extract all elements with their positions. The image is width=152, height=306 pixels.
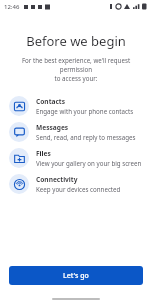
button[interactable]: Contacts <box>0 93 152 119</box>
button[interactable]: Connectivity <box>0 171 152 197</box>
staticText: Connectivity <box>36 175 78 184</box>
staticText: Contacts <box>36 97 66 106</box>
staticText: Send, read, and reply to messages <box>36 133 136 141</box>
other: Contacts <box>9 96 29 116</box>
button[interactable]: Files <box>0 145 152 171</box>
staticText: For the best experience, we'll request p… <box>5 56 147 83</box>
button[interactable]: Let's go <box>9 266 143 285</box>
staticText: Keep your devices connected <box>36 185 121 193</box>
staticText: Let's go <box>63 271 89 281</box>
staticText: Messages <box>36 123 69 132</box>
staticText: View your gallery on your big screen <box>36 159 142 167</box>
other: Files <box>9 148 29 168</box>
other: Connectivity <box>9 174 29 194</box>
staticText: 12:46 <box>4 3 20 11</box>
staticText: Engage with your phone contacts <box>36 107 134 115</box>
staticText: Before we begin <box>0 32 152 50</box>
staticText: Files <box>36 149 51 158</box>
button[interactable]: Messages <box>0 119 152 145</box>
other: Messages <box>9 122 29 142</box>
